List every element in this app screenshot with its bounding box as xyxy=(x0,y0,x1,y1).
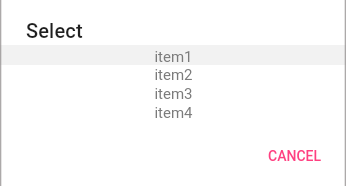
staticText: item2 xyxy=(154,66,193,84)
button[interactable]: CANCEL xyxy=(260,140,330,172)
staticText: item4 xyxy=(154,104,193,122)
staticText: Select xyxy=(26,19,83,42)
button[interactable]: item4 xyxy=(0,103,346,122)
button[interactable]: item2 xyxy=(0,65,346,84)
staticText: CANCEL xyxy=(268,148,322,164)
staticText: item1 xyxy=(154,48,193,66)
button[interactable]: item3 xyxy=(0,84,346,103)
button[interactable]: item1 xyxy=(0,47,346,66)
staticText: item3 xyxy=(154,85,193,103)
